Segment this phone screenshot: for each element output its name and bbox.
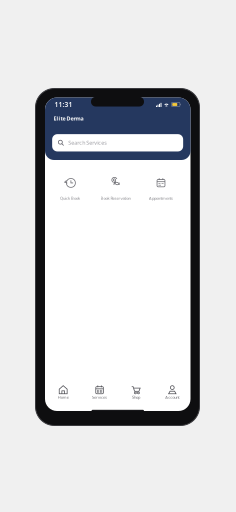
button[interactable]: Book Reservation bbox=[93, 176, 138, 202]
button[interactable]: Services bbox=[81, 385, 118, 402]
button[interactable]: Search Services bbox=[52, 134, 183, 151]
staticText: 11:31 bbox=[54, 100, 72, 109]
button[interactable]: Home bbox=[45, 385, 81, 402]
staticText: Quick Book bbox=[60, 195, 80, 201]
staticText: Services bbox=[92, 394, 107, 400]
staticText: Shop bbox=[132, 394, 140, 400]
staticText: Book Reservation bbox=[100, 195, 130, 201]
button[interactable]: Account bbox=[154, 385, 190, 402]
staticText: Home bbox=[58, 394, 69, 400]
staticText: Search Services bbox=[68, 139, 107, 146]
staticText: Appointments bbox=[149, 195, 173, 201]
button[interactable]: Shop bbox=[118, 385, 154, 402]
button[interactable]: Quick Book bbox=[47, 176, 93, 202]
button[interactable]: Appointments bbox=[138, 176, 184, 202]
staticText: Elite Derma bbox=[53, 115, 83, 122]
staticText: Account bbox=[165, 394, 179, 400]
